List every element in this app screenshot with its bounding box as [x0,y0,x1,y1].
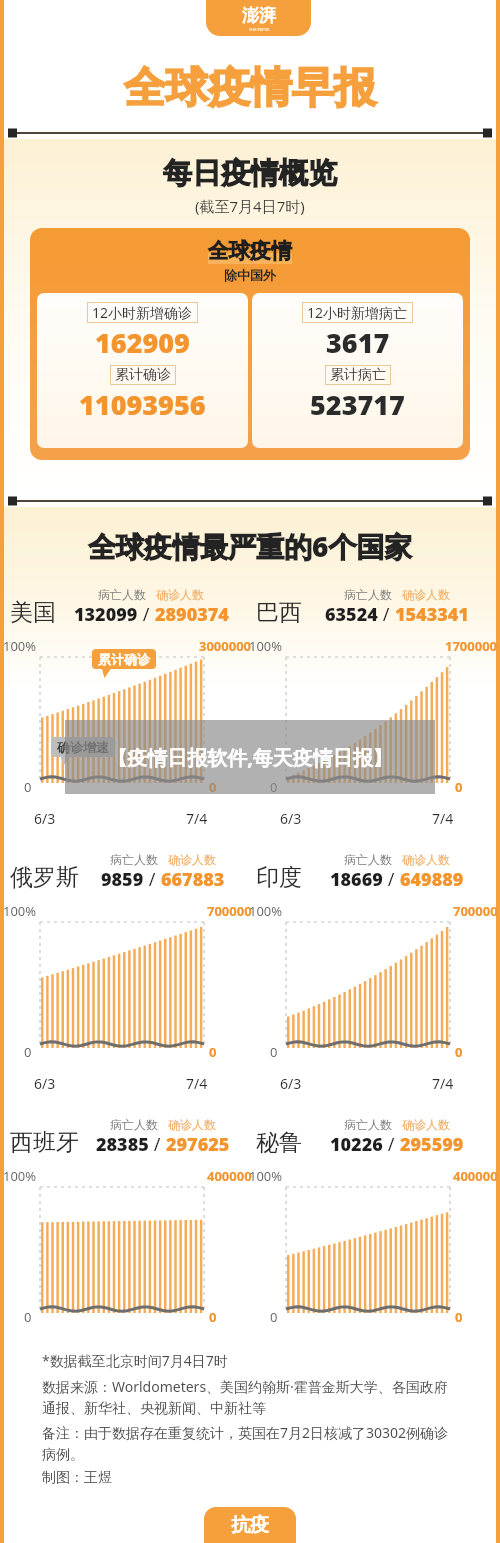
staticText: 295599 [400,1132,464,1157]
staticText: (截至7月4日7时) [195,196,305,216]
staticText: 病亡人数 [98,587,146,602]
staticText: 0 [24,1308,32,1326]
staticText: 西班牙 [10,1128,79,1157]
staticText: 7/4 [432,1074,454,1093]
staticText: 523717 [310,386,405,423]
staticText: 【疫情日报软件,每天疫情日报】 [79,744,421,771]
staticText: 全球疫情早报 [124,62,376,115]
staticText: 0 [455,1308,463,1326]
staticText: 100% [3,1167,37,1185]
staticText: 每日疫情概览 [163,155,337,192]
staticText: 667883 [161,867,225,892]
staticText: 18669 [330,867,383,892]
staticText: / [149,1132,166,1157]
staticText: 累计病亡 [330,366,386,384]
staticText: 制图：王煜 [42,1469,112,1487]
staticText: 确诊人数 [168,852,216,867]
button[interactable]: 12小时新增病亡 [252,293,463,448]
staticText: 确诊人数 [168,1117,216,1132]
staticText: 100% [249,637,283,655]
staticText: 病亡人数 [110,852,158,867]
staticText: 6/3 [280,1074,302,1093]
button[interactable]: 巴西 [250,587,496,828]
staticText: 7/4 [432,809,454,828]
staticText: 澎湃 [242,5,276,26]
staticText: 100% [249,1167,283,1185]
button[interactable]: 12小时新增确诊 [37,293,248,448]
staticText: 美国 [10,598,56,627]
staticText: 12小时新增确诊 [92,303,193,322]
staticText: 确诊增速 [57,739,109,755]
staticText: 649889 [400,867,464,892]
staticText: 备注：由于数据存在重复统计，英国在7月2日核减了30302例确诊病例。 [42,1423,454,1463]
staticText: 700000 [453,902,498,920]
staticText: 1543341 [395,602,469,627]
staticText: 400000 [453,1167,498,1185]
staticText: 63524 [325,602,378,627]
staticText: 11093956 [79,386,206,423]
staticText: 0 [209,1308,217,1326]
staticText: 病亡人数 [344,852,392,867]
staticText: 0 [24,1043,32,1061]
staticText: 确诊人数 [156,587,204,602]
staticText: 除中国外 [224,267,276,283]
staticText: 确诊人数 [402,852,450,867]
staticText: 0 [24,778,32,796]
staticText: 病亡人数 [344,587,392,602]
staticText: / [138,602,155,627]
staticText: / [383,867,400,892]
button[interactable]: 秘鲁 [250,1117,496,1337]
staticText: 0 [270,778,278,796]
staticText: 100% [249,902,283,920]
button[interactable]: 全球疫情 [30,228,470,460]
staticText: 9859 [101,867,144,892]
staticText: 秘鲁 [256,1128,302,1157]
staticText: 印度 [256,863,302,892]
staticText: 0 [270,1043,278,1061]
button[interactable]: 美国 [4,587,250,828]
staticText: 俄罗斯 [10,863,79,892]
staticText: 400000 [207,1167,252,1185]
button[interactable]: 抗疫 [204,1507,296,1543]
staticText: 病亡人数 [344,1117,392,1132]
button[interactable]: 西班牙 [4,1117,250,1337]
staticText: 700000 [207,902,252,920]
staticText: 3000000 [199,637,252,655]
staticText: 132099 [74,602,138,627]
staticText: 0 [455,778,463,796]
staticText: *数据截至北京时间7月4日7时 [42,1351,228,1370]
staticText: 12小时新增病亡 [307,303,408,322]
staticText: THE PAPER [249,27,270,32]
button[interactable]: 印度 [250,852,496,1093]
staticText: / [144,867,161,892]
staticText: 确诊人数 [402,1117,450,1132]
staticText: 100% [3,902,37,920]
staticText: 0 [455,1043,463,1061]
staticText: 2890374 [155,602,229,627]
staticText: 0 [270,1308,278,1326]
staticText: 数据来源：Worldometers、美国约翰斯·霍普金斯大学、各国政府通报、新华… [42,1377,454,1417]
staticText: 巴西 [256,598,302,627]
button[interactable]: 澎湃新闻 The Paper [206,0,311,36]
staticText: 3617 [326,324,390,361]
staticText: 28385 [96,1132,149,1157]
staticText: 确诊人数 [402,587,450,602]
staticText: 全球疫情 [208,238,292,264]
staticText: 6/3 [280,809,302,828]
button[interactable]: 俄罗斯 [4,852,250,1093]
staticText: 6/3 [34,1074,56,1093]
staticText: 297625 [166,1132,230,1157]
staticText: / [383,1132,400,1157]
staticText: 累计确诊 [115,366,171,384]
staticText: 6/3 [34,809,56,828]
staticText: 全球疫情最严重的6个国家 [88,527,413,565]
staticText: 100% [3,637,37,655]
staticText: 162909 [95,324,190,361]
staticText: 1700000 [445,637,498,655]
staticText: 10226 [330,1132,383,1157]
staticText: / [378,602,395,627]
staticText: 7/4 [186,1074,208,1093]
staticText: 病亡人数 [110,1117,158,1132]
staticText: 累计确诊 [98,651,150,667]
staticText: 7/4 [186,809,208,828]
